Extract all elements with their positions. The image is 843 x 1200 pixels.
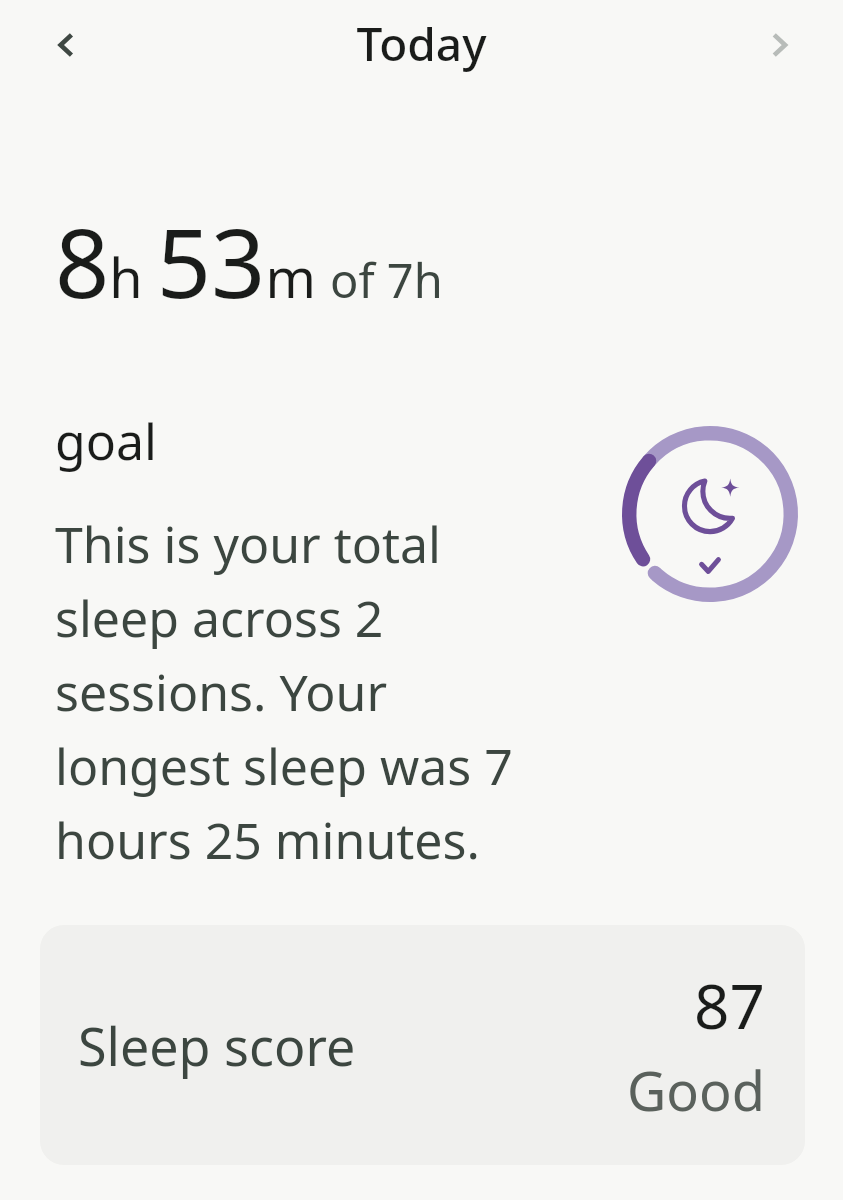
staticText: Sleep score bbox=[78, 1010, 356, 1081]
staticText: Good bbox=[627, 1053, 765, 1127]
staticText: 8h 53m of 7h bbox=[55, 196, 443, 325]
staticText: Today bbox=[0, 12, 843, 75]
button[interactable]: Previous day bbox=[30, 9, 102, 81]
staticText: 87 bbox=[694, 963, 765, 1047]
staticText: goal bbox=[55, 407, 157, 475]
button[interactable]: Next day bbox=[743, 9, 815, 81]
staticText: This is your total sleep across 2 sessio… bbox=[55, 510, 545, 874]
button[interactable]: Sleep score bbox=[40, 925, 805, 1165]
